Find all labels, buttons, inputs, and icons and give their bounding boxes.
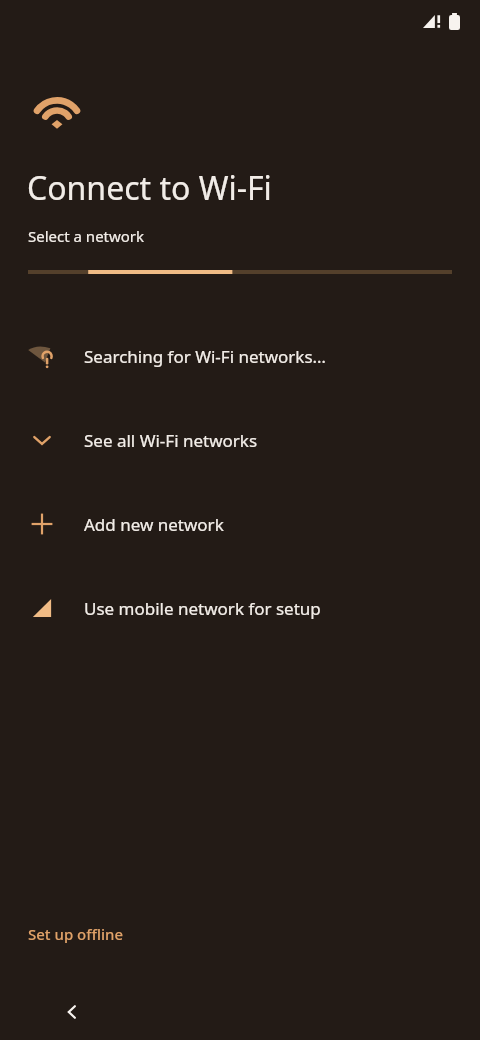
button[interactable]: Set up offline xyxy=(16,914,136,954)
staticText: Set up offline xyxy=(28,924,124,944)
staticText: Connect to Wi-Fi xyxy=(27,166,272,210)
button[interactable]: See all Wi-Fi networks xyxy=(0,398,480,482)
staticText: Select a network xyxy=(28,226,145,246)
staticText: Searching for Wi-Fi networks… xyxy=(84,345,327,368)
staticText: Use mobile network for setup xyxy=(84,597,321,620)
staticText: See all Wi-Fi networks xyxy=(84,429,258,452)
button[interactable]: Add new network xyxy=(0,482,480,566)
button[interactable]: Searching for Wi-Fi networks… xyxy=(0,314,480,398)
staticText: Add new network xyxy=(84,513,224,536)
button[interactable]: Use mobile network for setup xyxy=(0,566,480,650)
button[interactable]: Back xyxy=(52,992,92,1032)
